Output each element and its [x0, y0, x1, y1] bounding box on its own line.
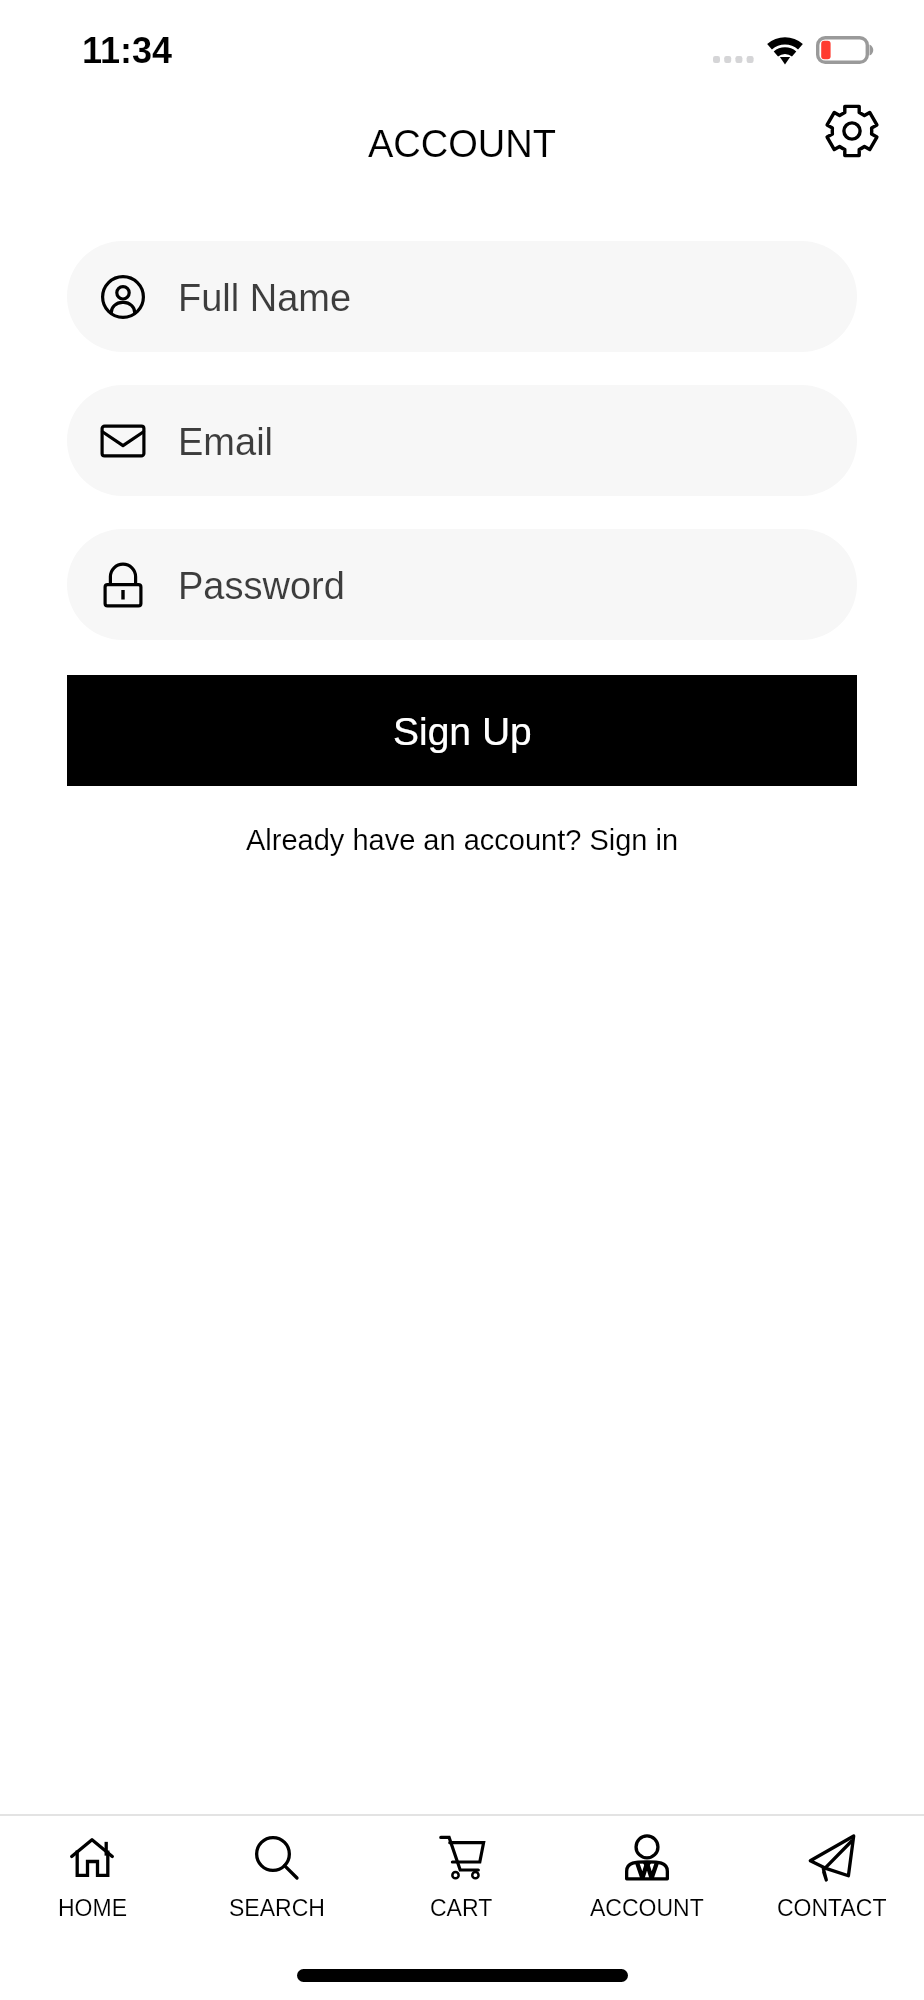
button[interactable]: Full Name: [67, 241, 857, 352]
button[interactable]: Already have an account? Sign in: [246, 822, 679, 854]
staticText: 11:34: [82, 30, 173, 70]
staticText: SEARCH: [229, 1895, 325, 1921]
button[interactable]: ACCOUNT: [554, 1816, 739, 1938]
button[interactable]: HOME: [0, 1816, 184, 1938]
button[interactable]: Password: [67, 529, 857, 640]
staticText: Full Name: [178, 277, 352, 319]
button[interactable]: CONTACT: [739, 1816, 924, 1938]
button[interactable]: Settings: [818, 97, 886, 165]
button[interactable]: SEARCH: [184, 1816, 369, 1938]
staticText: CONTACT: [777, 1895, 887, 1921]
staticText: Sign Up: [393, 710, 532, 754]
button[interactable]: Email: [67, 385, 857, 496]
staticText: Already have an account? Sign in: [246, 824, 679, 856]
staticText: HOME: [58, 1895, 127, 1921]
button[interactable]: CART: [369, 1816, 554, 1938]
staticText: Password: [178, 565, 345, 607]
button[interactable]: Sign Up: [67, 675, 857, 786]
staticText: ACCOUNT: [368, 123, 556, 165]
staticText: CART: [430, 1895, 493, 1921]
staticText: Email: [178, 421, 274, 463]
staticText: ACCOUNT: [590, 1895, 704, 1921]
